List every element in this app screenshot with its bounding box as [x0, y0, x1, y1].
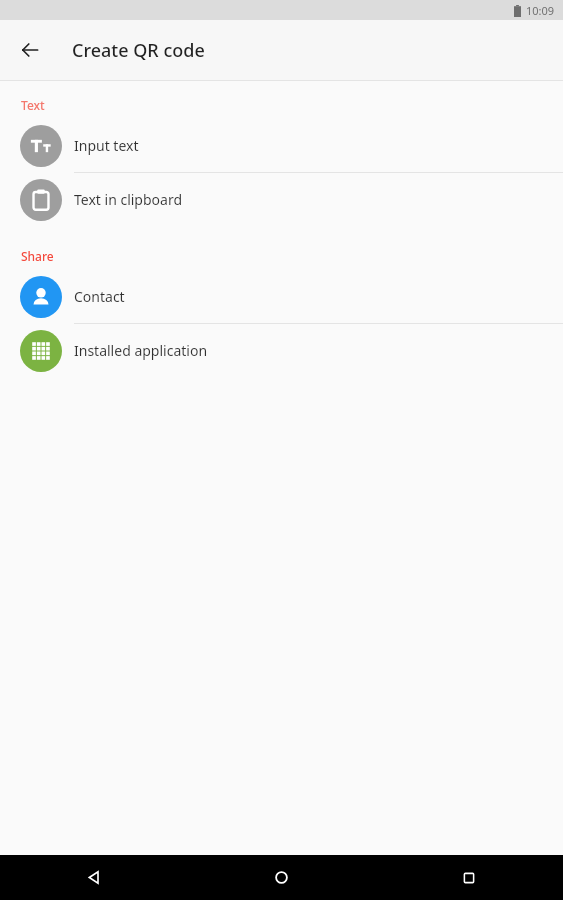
staticText: Text in clipboard	[74, 190, 183, 209]
button[interactable]: Installed application	[0, 324, 563, 377]
staticText: Create QR code	[72, 38, 205, 63]
staticText: Share	[21, 248, 54, 264]
staticText: Input text	[74, 136, 139, 155]
button[interactable]: Text in clipboard	[0, 173, 563, 226]
staticText: Text	[21, 97, 45, 113]
button[interactable]: Contact	[0, 270, 563, 323]
button[interactable]: Recent apps	[375, 855, 563, 900]
staticText: 10:09	[526, 3, 555, 18]
button[interactable]: Back	[0, 855, 187, 900]
button[interactable]: Home	[187, 855, 375, 900]
staticText: Installed application	[74, 341, 208, 360]
staticText: Contact	[74, 287, 125, 306]
button[interactable]: Back	[6, 26, 54, 74]
button[interactable]: Input text	[0, 119, 563, 172]
